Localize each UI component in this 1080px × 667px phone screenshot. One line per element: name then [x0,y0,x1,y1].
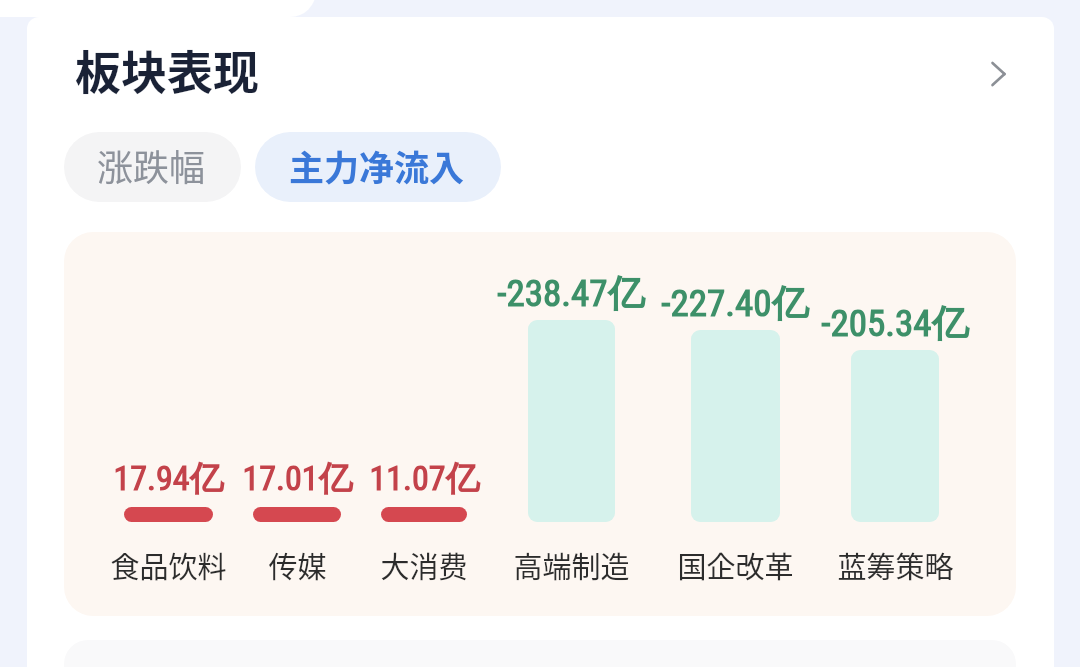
staticText: 食品饮料 [110,544,227,586]
staticText: 高端制造 [513,544,630,586]
staticText: 17.01亿 [242,457,353,500]
staticText: -205.34亿 [821,300,969,347]
staticText: 传媒 [268,544,327,586]
staticText: 涨跌幅 [97,139,206,191]
button[interactable] [64,232,1016,616]
button[interactable]: Open sector performance [970,44,1030,104]
button[interactable]: 涨跌幅 [64,132,241,202]
staticText: 国企改革 [677,544,794,586]
button[interactable]: 主力净流入 [255,132,501,202]
staticText: 11.07亿 [369,457,480,500]
staticText: 大消费 [380,544,468,586]
staticText: 板块表现 [75,36,259,100]
button[interactable]: 板块表现 [48,28,368,92]
staticText: 蓝筹策略 [837,544,954,586]
staticText: 主力净流入 [289,140,465,191]
staticText: -227.40亿 [661,280,809,327]
staticText: -238.47亿 [497,270,645,317]
staticText: 17.94亿 [113,457,224,500]
